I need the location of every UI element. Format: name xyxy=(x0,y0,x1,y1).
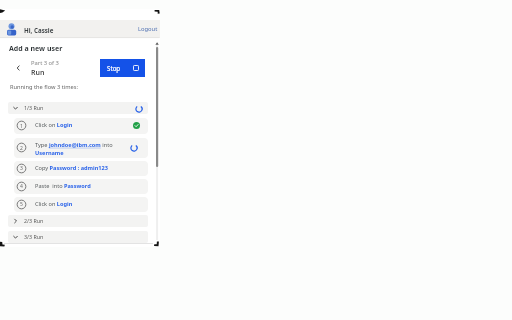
staticText: Paste into Password xyxy=(35,182,91,190)
staticText: 4 xyxy=(20,183,23,190)
staticText: 3/3 Run xyxy=(24,233,44,240)
staticText: Type johndoe@ibm.com into Username xyxy=(35,141,113,156)
staticText: Hi, Cassie xyxy=(24,26,54,34)
staticText: Running the flow 3 times: xyxy=(10,83,79,91)
staticText: Click on Login xyxy=(35,200,73,208)
button[interactable]: 3/3 Run xyxy=(8,231,148,243)
button[interactable]: 2/3 Run xyxy=(8,215,148,227)
staticText: 5 xyxy=(20,201,23,208)
staticText: Logout xyxy=(138,25,158,33)
staticText: Part 3 of 3 xyxy=(31,59,59,67)
staticText: Run xyxy=(31,68,45,78)
staticText: 2 xyxy=(20,145,23,152)
staticText: 1/3 Run xyxy=(24,104,44,111)
button[interactable]: 1 xyxy=(14,118,148,134)
staticText: Click on Login xyxy=(35,121,73,129)
button[interactable] xyxy=(13,62,23,73)
button[interactable]: Logout xyxy=(132,20,159,37)
staticText: Stop xyxy=(107,64,121,72)
staticText: 1 xyxy=(20,123,23,130)
button[interactable]: 5 xyxy=(14,197,148,212)
button[interactable]: Stop xyxy=(100,59,145,77)
button[interactable]: 1/3 Run xyxy=(8,102,148,114)
button[interactable]: 3 xyxy=(14,161,148,176)
button[interactable]: 2 xyxy=(14,138,148,158)
staticText: 3 xyxy=(20,165,23,172)
staticText: Add a new user xyxy=(9,44,63,54)
button[interactable]: 4 xyxy=(14,179,148,194)
staticText: Copy Password : admin123 xyxy=(35,164,108,172)
staticText: 2/3 Run xyxy=(24,217,44,224)
